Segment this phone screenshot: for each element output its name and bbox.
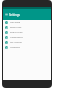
button[interactable]: Advanced bbox=[3, 45, 51, 50]
staticText: Notifications bbox=[10, 36, 23, 39]
button[interactable]: Notifications bbox=[3, 35, 51, 40]
staticText: Advanced bbox=[10, 46, 20, 49]
staticText: Settings bbox=[9, 13, 20, 17]
button[interactable]: Wifi Setup bbox=[3, 20, 51, 25]
staticText: Search Tools bbox=[10, 31, 23, 34]
button[interactable]: Navigation menu bbox=[3, 9, 51, 20]
staticText: Wifi Setup bbox=[10, 21, 21, 24]
button[interactable]: Navigation menu bbox=[3, 9, 9, 20]
staticText: Device Info bbox=[10, 26, 22, 29]
button[interactable]: Search Tools bbox=[3, 30, 51, 35]
button[interactable]: Device Info bbox=[3, 25, 51, 30]
button[interactable]: My Account bbox=[3, 40, 51, 45]
staticText: My Account bbox=[10, 41, 22, 44]
